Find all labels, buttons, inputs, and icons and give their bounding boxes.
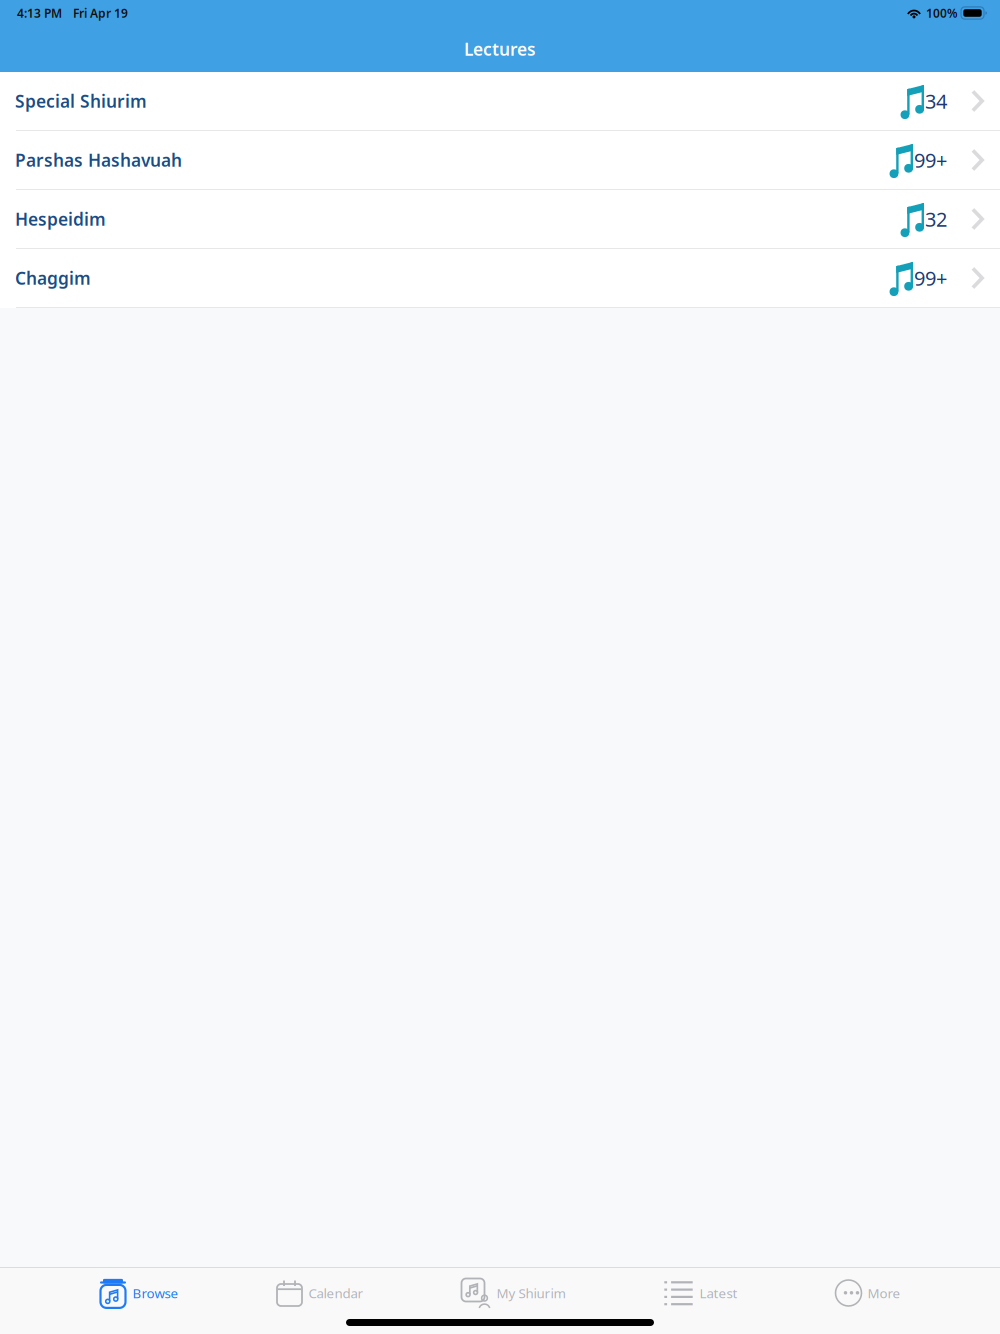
staticText: Browse: [132, 1284, 178, 1302]
button[interactable]: Browse: [99, 1271, 178, 1315]
staticText: Special Shiurim: [15, 89, 147, 112]
staticText: More: [867, 1284, 900, 1302]
button[interactable]: My Shiurim: [461, 1271, 565, 1315]
staticText: Hespeidim: [15, 207, 106, 230]
button[interactable]: Chaggim: [0, 249, 1000, 308]
staticText: 4:13 PM: [17, 5, 62, 21]
staticText: 100%: [926, 5, 958, 21]
button[interactable]: Latest: [663, 1271, 737, 1315]
staticText: Parshas Hashavuah: [15, 148, 182, 171]
staticText: Lectures: [464, 37, 536, 60]
staticText: 99+: [914, 147, 947, 173]
staticText: Calendar: [308, 1284, 363, 1302]
staticText: 32: [925, 206, 947, 232]
staticText: 34: [925, 88, 947, 114]
button[interactable]: Calendar: [276, 1271, 363, 1315]
staticText: My Shiurim: [496, 1284, 565, 1302]
staticText: Latest: [699, 1284, 737, 1302]
button[interactable]: Hespeidim: [0, 190, 1000, 249]
button[interactable]: More: [835, 1271, 900, 1315]
button[interactable]: Parshas Hashavuah: [0, 131, 1000, 190]
staticText: Chaggim: [15, 266, 91, 289]
staticText: 99+: [914, 265, 947, 291]
staticText: Fri Apr 19: [73, 5, 128, 21]
button[interactable]: Special Shiurim: [0, 72, 1000, 131]
